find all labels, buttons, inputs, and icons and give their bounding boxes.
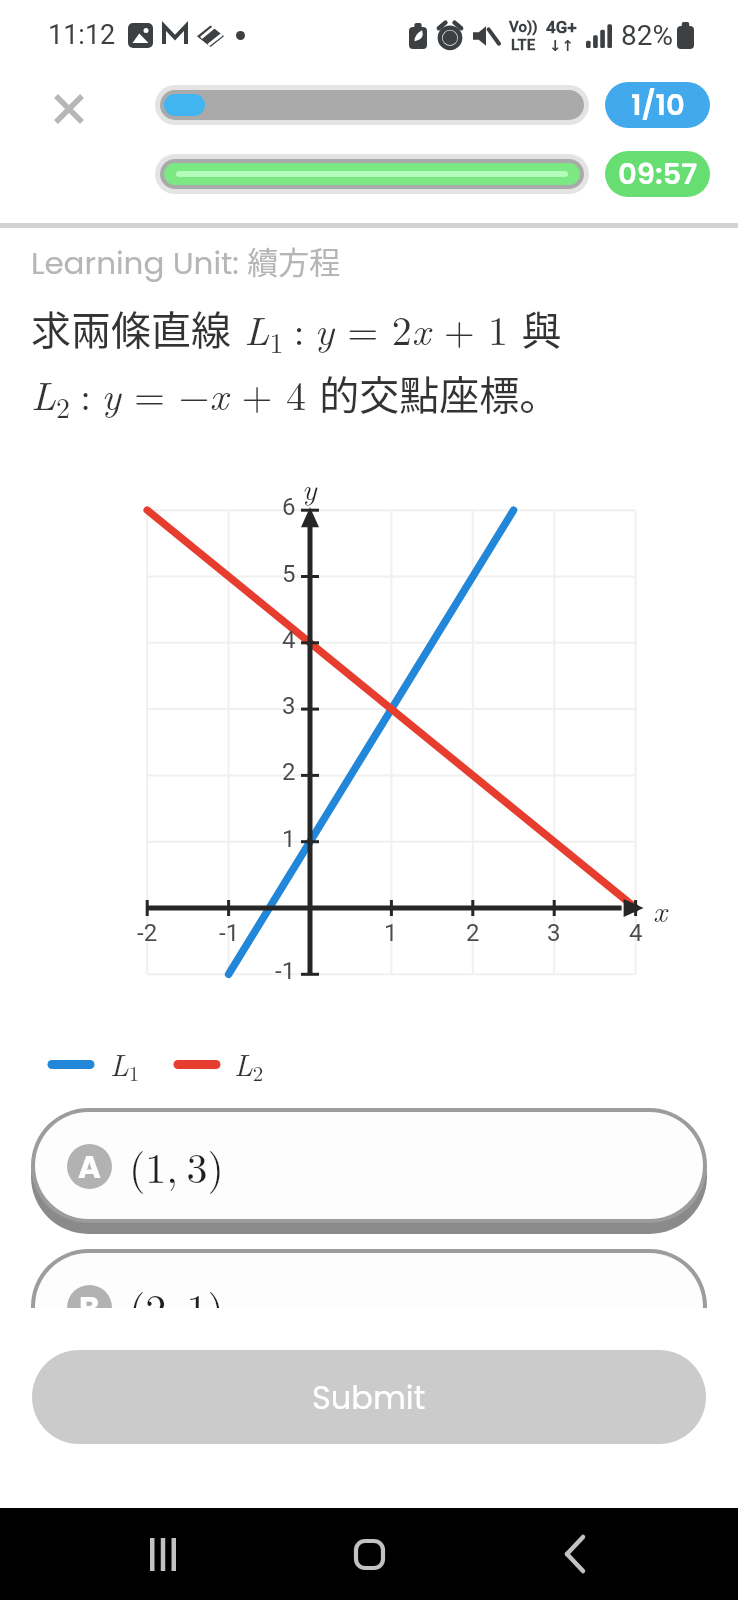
staticText: 1/10 bbox=[631, 85, 685, 126]
staticText: A bbox=[78, 1145, 101, 1188]
staticText: 09:57 bbox=[618, 154, 698, 195]
staticText: Submit bbox=[312, 1375, 426, 1420]
staticText: 4G+ bbox=[546, 17, 577, 37]
button[interactable]: B bbox=[35, 1253, 703, 1360]
staticText: 1 bbox=[384, 919, 398, 947]
staticText: -1 bbox=[275, 957, 296, 985]
button[interactable]: Close bbox=[36, 76, 102, 142]
staticText: 11:12 bbox=[48, 19, 116, 51]
button[interactable]: 1/10 bbox=[605, 82, 710, 128]
staticText: -1 bbox=[219, 919, 240, 947]
staticText: L2 bbox=[234, 1042, 264, 1087]
staticText: y bbox=[302, 466, 317, 508]
staticText: L2 : y = −x + 4 的交點座標。 bbox=[31, 364, 560, 426]
staticText: 3 bbox=[547, 919, 561, 947]
staticText: (2, 1) bbox=[129, 1277, 224, 1337]
staticText: 2 bbox=[466, 919, 480, 947]
staticText: LTE bbox=[511, 36, 536, 54]
staticText: 求兩條直線 L1 : y = 2x + 1 與 bbox=[31, 299, 562, 361]
staticText: L1 bbox=[110, 1042, 140, 1087]
staticText: 2 bbox=[282, 758, 296, 786]
staticText: x bbox=[653, 888, 667, 930]
staticText: 5 bbox=[282, 560, 296, 588]
staticText: Vo)) bbox=[509, 18, 538, 36]
button[interactable]: Submit bbox=[32, 1350, 706, 1444]
staticText: 4 bbox=[629, 919, 643, 947]
button[interactable]: Back bbox=[535, 1508, 615, 1600]
staticText: (1, 3) bbox=[129, 1136, 224, 1196]
staticText: 82% bbox=[621, 19, 673, 52]
staticText: Learning Unit: 續方程 bbox=[31, 238, 341, 285]
staticText: 4 bbox=[282, 626, 296, 654]
staticText: 6 bbox=[282, 493, 296, 521]
staticText: 3 bbox=[282, 692, 296, 720]
button[interactable]: Recent apps bbox=[123, 1508, 203, 1600]
button[interactable]: 09:57 bbox=[605, 151, 710, 197]
staticText: B bbox=[79, 1286, 100, 1329]
staticText: ↓↑ bbox=[549, 37, 575, 54]
staticText: -2 bbox=[137, 919, 158, 947]
button[interactable]: A bbox=[35, 1112, 703, 1219]
button[interactable]: Home bbox=[329, 1508, 409, 1600]
staticText: 1 bbox=[282, 825, 296, 853]
